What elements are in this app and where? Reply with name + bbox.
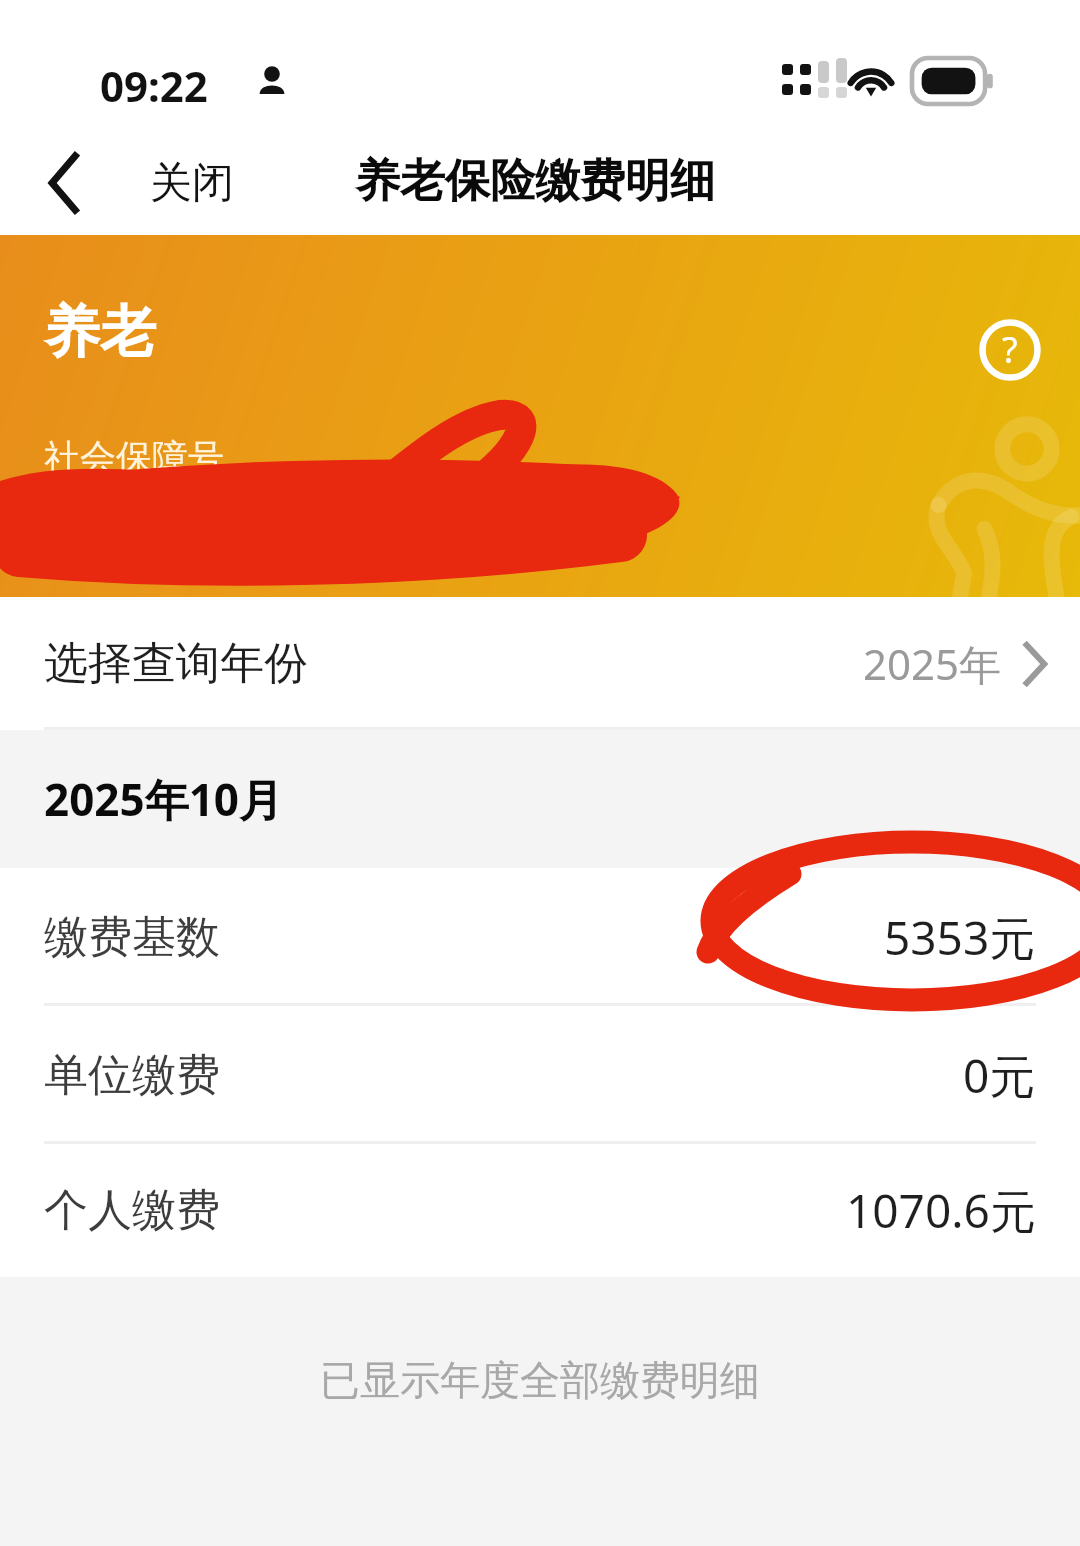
staticText: ?	[1002, 325, 1018, 374]
staticText: 养老保险缴费明细	[355, 153, 715, 210]
staticText: 0元	[963, 1044, 1036, 1107]
staticText: 09:22	[100, 57, 208, 114]
staticText: 选择查询年份	[44, 636, 308, 691]
button[interactable]: 选择查询年份	[0, 597, 1080, 730]
staticText: 个人缴费	[44, 1183, 220, 1238]
staticText: 社会保障号	[44, 435, 224, 480]
button[interactable]: 个人缴费	[0, 1144, 1080, 1277]
staticText: 已显示年度全部缴费明细	[320, 1355, 760, 1405]
button[interactable]: 关闭	[132, 140, 252, 226]
staticText: 养老	[44, 297, 156, 368]
staticText: 单位缴费	[44, 1048, 220, 1103]
staticText: 2025年10月	[44, 769, 284, 829]
button[interactable]: Help	[952, 292, 1068, 408]
button[interactable]: 单位缴费	[0, 1006, 1080, 1144]
staticText: 2025年	[863, 635, 1002, 692]
staticText: 关闭	[150, 157, 234, 210]
staticText: 1070.6元	[846, 1179, 1036, 1242]
button[interactable]: Back	[20, 138, 110, 228]
staticText: 缴费基数	[44, 910, 220, 965]
staticText: 5353元	[884, 906, 1036, 969]
button[interactable]: 缴费基数	[0, 868, 1080, 1006]
